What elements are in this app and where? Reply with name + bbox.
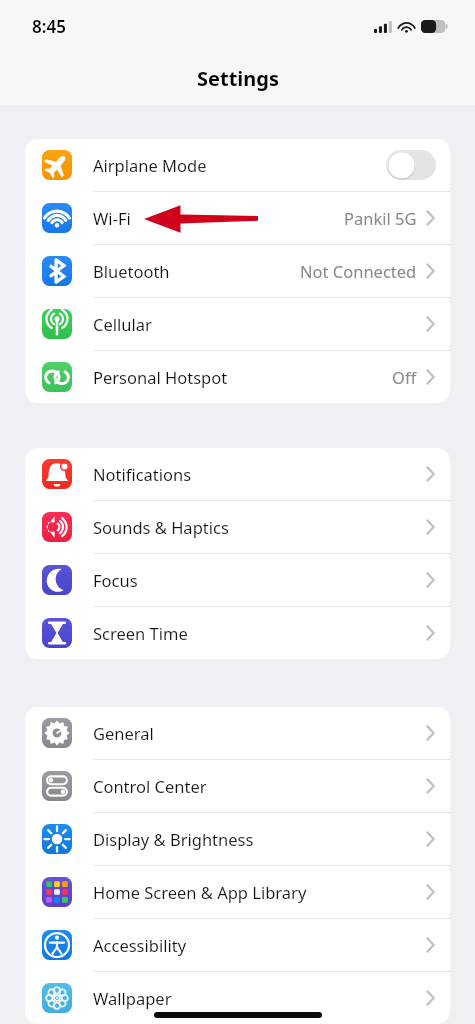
button[interactable]: Airplane Mode [25, 139, 450, 191]
staticText: Wallpaper [93, 987, 426, 1009]
button[interactable]: Cellular [25, 298, 450, 350]
staticText: Airplane Mode [93, 154, 386, 176]
button[interactable]: Control Center [25, 760, 450, 812]
staticText: Control Center [93, 775, 426, 797]
staticText: Notifications [93, 463, 426, 485]
button[interactable]: Accessibility [25, 919, 450, 971]
staticText: Display & Brightness [93, 828, 426, 850]
staticText: Sounds & Haptics [93, 516, 426, 538]
button[interactable]: Wi-Fi [25, 192, 450, 244]
button[interactable]: Wallpaper [25, 972, 450, 1024]
button[interactable]: Personal Hotspot [25, 351, 450, 403]
staticText: 8:45 [32, 15, 66, 38]
staticText: General [93, 722, 426, 744]
button[interactable]: Display & Brightness [25, 813, 450, 865]
staticText: Pankil 5G [344, 207, 417, 229]
staticText: Focus [93, 569, 426, 591]
staticText: Accessibility [93, 934, 426, 956]
staticText: Settings [197, 65, 279, 92]
staticText: Wi-Fi [93, 207, 344, 229]
button[interactable]: Home Screen & App Library [25, 866, 450, 918]
staticText: Off [392, 366, 417, 388]
button[interactable]: Sounds & Haptics [25, 501, 450, 553]
button[interactable]: Notifications [25, 448, 450, 500]
button[interactable]: General [25, 707, 450, 759]
staticText: Personal Hotspot [93, 366, 392, 388]
staticText: Not Connected [300, 260, 417, 282]
staticText: Home Screen & App Library [93, 881, 426, 903]
staticText: Cellular [93, 313, 426, 335]
button[interactable] [386, 150, 436, 180]
button[interactable]: Bluetooth [25, 245, 450, 297]
button[interactable]: Screen Time [25, 607, 450, 659]
staticText: Screen Time [93, 622, 426, 644]
button[interactable]: Focus [25, 554, 450, 606]
other: Annotation arrow pointing to Wi-Fi [144, 204, 258, 234]
staticText: Bluetooth [93, 260, 300, 282]
